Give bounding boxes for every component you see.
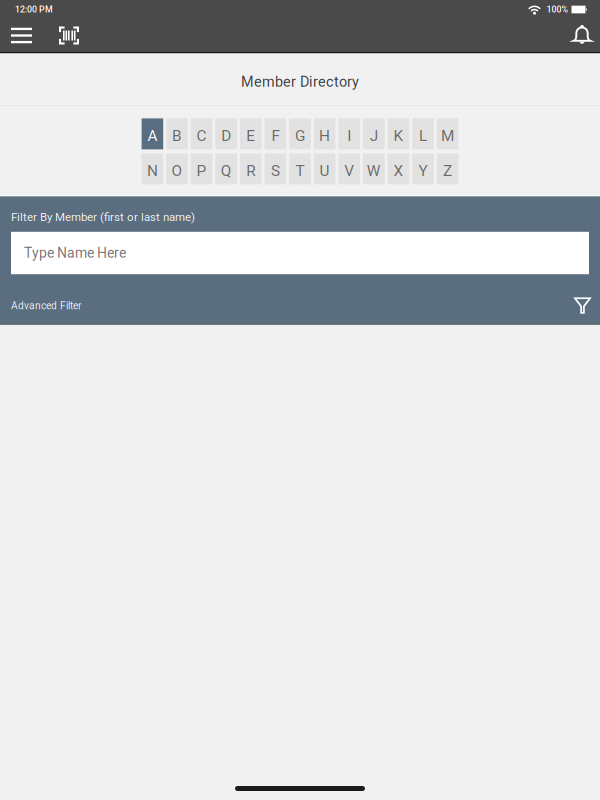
button[interactable]: Advanced Filter — [0, 274, 600, 323]
staticText: T — [295, 162, 304, 180]
button[interactable]: W — [363, 153, 385, 184]
button[interactable]: X — [388, 153, 409, 184]
button[interactable]: R — [240, 153, 262, 184]
button[interactable]: S — [265, 153, 286, 184]
button[interactable]: I — [338, 118, 360, 149]
button[interactable]: J — [363, 118, 385, 149]
staticText: Q — [221, 162, 232, 180]
staticText: I — [347, 127, 351, 145]
button[interactable]: U — [314, 153, 335, 184]
staticText: Type Name Here — [24, 245, 126, 261]
button[interactable]: A — [142, 118, 163, 149]
staticText: 12:00 PM — [15, 4, 53, 15]
button[interactable]: D — [215, 118, 237, 149]
staticText: J — [370, 127, 378, 145]
staticText: W — [367, 162, 381, 180]
staticText: Z — [443, 162, 452, 180]
button[interactable]: M — [437, 118, 458, 149]
staticText: Advanced Filter — [11, 300, 81, 312]
button[interactable]: P — [191, 153, 212, 184]
button[interactable]: Q — [215, 153, 237, 184]
staticText: U — [320, 162, 330, 180]
button[interactable]: G — [289, 118, 311, 149]
staticText: V — [344, 162, 354, 180]
staticText: Y — [418, 162, 427, 180]
button[interactable]: Scan barcode — [37, 19, 87, 51]
button[interactable]: L — [412, 118, 434, 149]
staticText: 100% — [546, 4, 567, 15]
staticText: E — [246, 127, 255, 145]
staticText: F — [271, 127, 279, 145]
staticText: R — [246, 162, 255, 180]
staticText: B — [172, 127, 182, 145]
button[interactable]: E — [240, 118, 262, 149]
button[interactable]: Y — [412, 153, 434, 184]
staticText: M — [441, 127, 454, 145]
staticText: C — [197, 127, 207, 145]
staticText: P — [197, 162, 207, 180]
staticText: S — [271, 162, 280, 180]
button[interactable]: N — [142, 153, 163, 184]
button[interactable]: Notifications — [563, 19, 594, 51]
staticText: X — [393, 162, 403, 180]
staticText: N — [147, 162, 158, 180]
staticText: H — [319, 127, 330, 145]
staticText: G — [295, 127, 305, 145]
staticText: A — [147, 127, 157, 145]
button[interactable]: T — [289, 153, 311, 184]
staticText: Filter By Member (first or last name) — [11, 210, 195, 224]
staticText: O — [171, 162, 182, 180]
button[interactable]: H — [314, 118, 335, 149]
button[interactable]: O — [166, 153, 188, 184]
staticText: L — [419, 127, 427, 145]
button[interactable]: C — [191, 118, 212, 149]
button[interactable]: B — [166, 118, 188, 149]
button[interactable]: Z — [437, 153, 458, 184]
button[interactable]: K — [388, 118, 409, 149]
staticText: Member Directory — [241, 73, 359, 90]
staticText: K — [393, 127, 403, 145]
button[interactable]: F — [265, 118, 286, 149]
button[interactable]: Menu — [6, 19, 37, 51]
staticText: D — [221, 127, 231, 145]
button[interactable]: V — [338, 153, 360, 184]
